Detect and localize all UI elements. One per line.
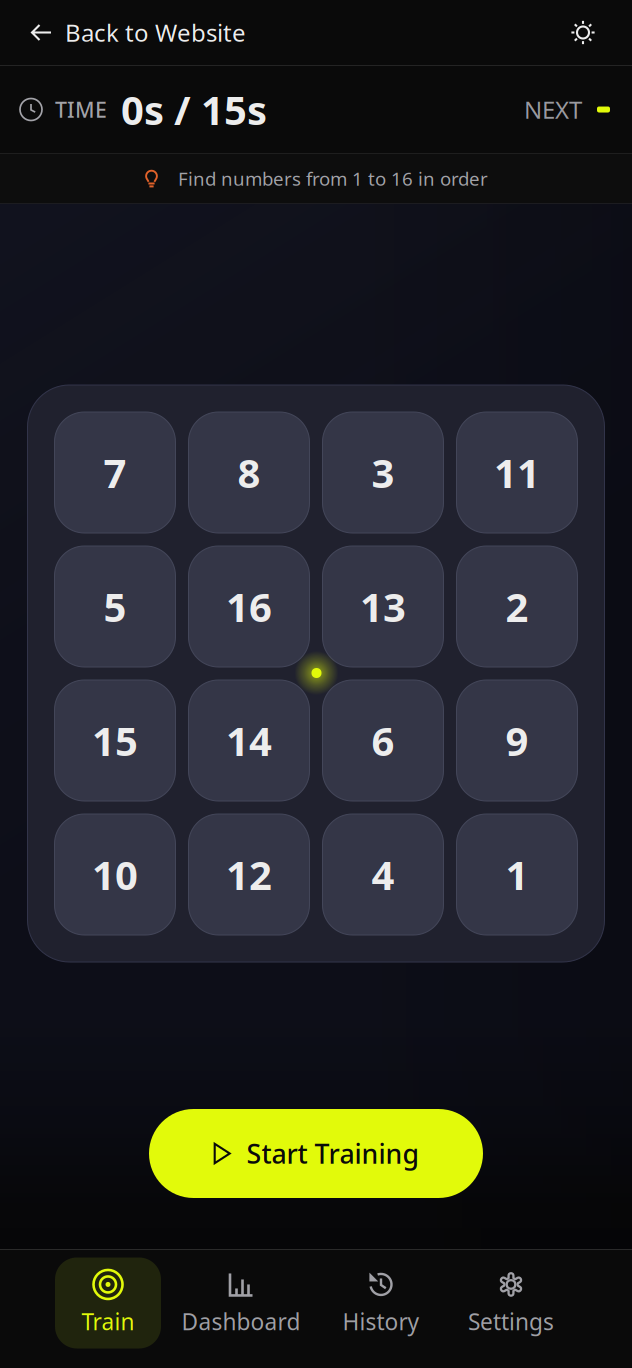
- staticText: 1: [505, 848, 528, 901]
- staticText: 2: [505, 580, 528, 633]
- button[interactable]: 9: [456, 680, 577, 801]
- staticText: 10: [92, 848, 138, 901]
- staticText: Settings: [468, 1306, 554, 1336]
- button[interactable]: 6: [322, 680, 443, 801]
- button[interactable]: 16: [188, 546, 309, 667]
- staticText: 7: [103, 446, 126, 499]
- button[interactable]: Dashboard: [165, 1250, 317, 1368]
- staticText: 13: [360, 580, 406, 633]
- button[interactable]: 14: [188, 680, 309, 801]
- staticText: NEXT: [524, 94, 582, 125]
- staticText: Find numbers from 1 to 16 in order: [178, 166, 488, 191]
- button[interactable]: Toggle brightness: [551, 0, 632, 65]
- staticText: 8: [237, 446, 260, 499]
- button[interactable]: Train: [55, 1250, 161, 1368]
- button[interactable]: 2: [456, 546, 577, 667]
- staticText: 5: [103, 580, 126, 633]
- button[interactable]: 7: [54, 412, 175, 533]
- staticText: 4: [371, 848, 394, 901]
- staticText: 3: [371, 446, 394, 499]
- staticText: TIME: [55, 95, 107, 124]
- button[interactable]: 15: [54, 680, 175, 801]
- button[interactable]: 3: [322, 412, 443, 533]
- button[interactable]: Settings: [445, 1250, 577, 1368]
- staticText: Back to Website: [65, 17, 246, 48]
- button[interactable]: 8: [188, 412, 309, 533]
- button[interactable]: 13: [322, 546, 443, 667]
- button[interactable]: 4: [322, 814, 443, 935]
- staticText: Start Training: [246, 1136, 419, 1171]
- staticText: 6: [371, 714, 394, 767]
- staticText: 14: [226, 714, 272, 767]
- button[interactable]: 1: [456, 814, 577, 935]
- button[interactable]: 11: [456, 412, 577, 533]
- staticText: Dashboard: [181, 1306, 300, 1336]
- staticText: 11: [494, 446, 540, 499]
- button[interactable]: 5: [54, 546, 175, 667]
- staticText: Train: [81, 1306, 134, 1336]
- button[interactable]: Start Training: [149, 1109, 483, 1198]
- button[interactable]: History: [321, 1250, 441, 1368]
- button[interactable]: 12: [188, 814, 309, 935]
- staticText: 0s / 15s: [121, 83, 267, 136]
- staticText: History: [342, 1306, 419, 1336]
- staticText: 16: [226, 580, 272, 633]
- staticText: 9: [505, 714, 528, 767]
- staticText: 12: [226, 848, 272, 901]
- button[interactable]: Back to Website: [0, 0, 264, 65]
- staticText: 15: [92, 714, 138, 767]
- button[interactable]: 10: [54, 814, 175, 935]
